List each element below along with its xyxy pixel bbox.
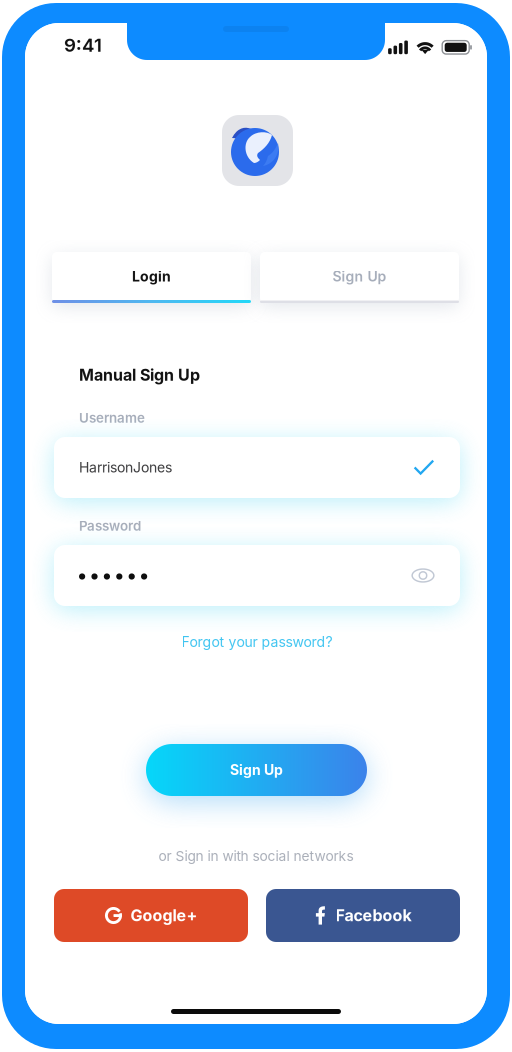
button[interactable]: Sign Up [260, 252, 459, 303]
staticText: 9:41 [64, 34, 102, 56]
staticText: or Sign in with social networks [158, 848, 353, 864]
staticText: Google+ [130, 906, 197, 925]
button[interactable]: Facebook [266, 889, 460, 942]
staticText: Username [79, 410, 145, 426]
button[interactable]: Forgot your password? [54, 631, 460, 653]
staticText: Facebook [335, 906, 411, 925]
staticText: Password [79, 518, 141, 534]
button[interactable]: Login [52, 252, 251, 303]
staticText: HarrisonJones [79, 459, 172, 476]
staticText: Sign Up [230, 761, 283, 778]
staticText: Sign Up [332, 268, 386, 285]
button[interactable]: or Sign in with social networks [25, 846, 487, 866]
button[interactable]: Sign Up [146, 744, 367, 796]
staticText: Manual Sign Up [79, 365, 200, 385]
staticText: Forgot your password? [181, 633, 332, 650]
staticText: Login [132, 268, 171, 285]
button[interactable]: Google+ [54, 889, 248, 942]
